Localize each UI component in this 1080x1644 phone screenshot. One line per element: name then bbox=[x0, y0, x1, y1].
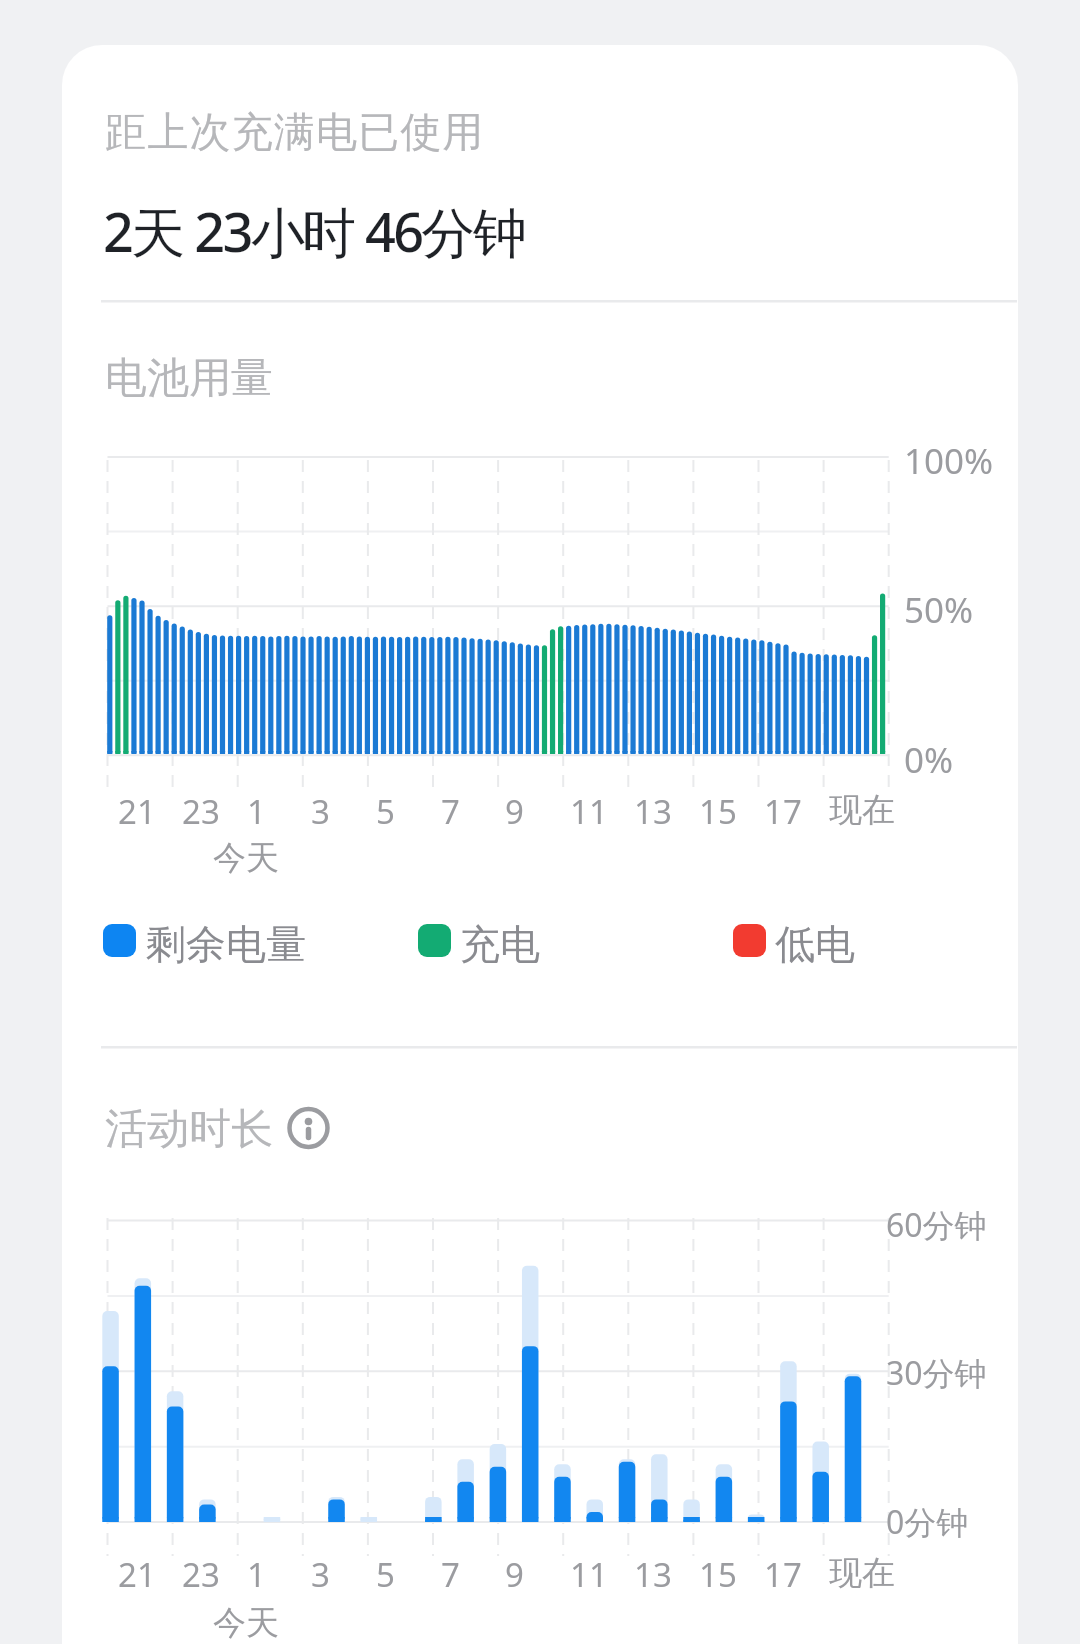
staticText: 30分钟 bbox=[886, 1351, 987, 1395]
button[interactable] bbox=[100, 915, 330, 970]
staticText: 1 bbox=[247, 1552, 266, 1597]
staticText: 今天 bbox=[213, 1602, 279, 1644]
staticText: 剩余电量 bbox=[146, 919, 306, 969]
staticText: 15 bbox=[699, 789, 737, 834]
staticText: 7 bbox=[441, 1552, 460, 1597]
staticText: 3 bbox=[311, 789, 330, 834]
button[interactable] bbox=[415, 915, 545, 970]
button[interactable] bbox=[730, 915, 860, 970]
staticText: 21 bbox=[118, 1552, 156, 1597]
staticText: 60分钟 bbox=[886, 1203, 987, 1247]
staticText: 23 bbox=[182, 789, 220, 834]
staticText: 3 bbox=[311, 1552, 330, 1597]
staticText: 15 bbox=[699, 1552, 737, 1597]
staticText: 9 bbox=[505, 1552, 524, 1597]
staticText: 17 bbox=[764, 1552, 802, 1597]
staticText: 17 bbox=[764, 789, 802, 834]
staticText: 现在 bbox=[829, 1552, 895, 1594]
staticText: 7 bbox=[441, 789, 460, 834]
staticText: 5 bbox=[376, 1552, 395, 1597]
staticText: 5 bbox=[376, 789, 395, 834]
staticText: 13 bbox=[634, 789, 672, 834]
staticText: 2天 23小时 46分钟 bbox=[103, 194, 525, 268]
staticText: 13 bbox=[634, 1552, 672, 1597]
staticText: 今天 bbox=[213, 837, 279, 879]
staticText: 距上次充满电已使用 bbox=[105, 107, 485, 159]
button[interactable] bbox=[288, 1106, 332, 1150]
staticText: 21 bbox=[118, 789, 156, 834]
staticText: 低电 bbox=[775, 919, 855, 969]
staticText: 50% bbox=[904, 586, 974, 634]
staticText: 0% bbox=[904, 736, 954, 784]
staticText: 100% bbox=[904, 437, 994, 485]
staticText: 充电 bbox=[460, 919, 540, 969]
staticText: 0分钟 bbox=[886, 1500, 969, 1544]
staticText: 11 bbox=[570, 789, 608, 834]
staticText: 现在 bbox=[829, 789, 895, 831]
staticText: 活动时长 bbox=[105, 1103, 273, 1156]
staticText: 电池用量 bbox=[105, 352, 273, 405]
staticText: 9 bbox=[505, 789, 524, 834]
staticText: 23 bbox=[182, 1552, 220, 1597]
staticText: 1 bbox=[247, 789, 266, 834]
staticText: 11 bbox=[570, 1552, 608, 1597]
